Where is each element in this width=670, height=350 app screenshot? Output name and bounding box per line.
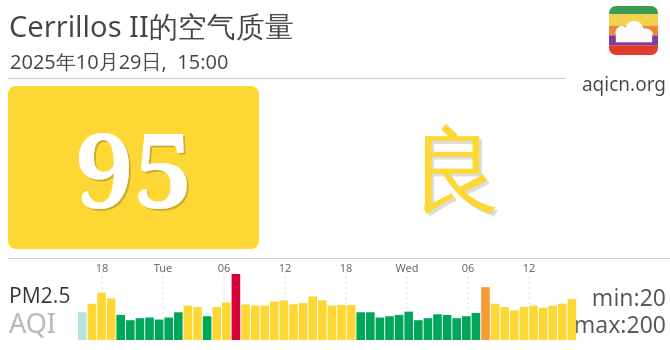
staticText: 06: [204, 260, 244, 275]
button[interactable]: aqicn.org logo: [609, 6, 658, 55]
staticText: AQI: [9, 304, 56, 341]
staticText: 18: [326, 260, 366, 275]
button[interactable]: 95: [8, 86, 259, 249]
staticText: 12: [509, 260, 549, 275]
staticText: PM2.5: [9, 281, 71, 310]
staticText: aqicn.org: [571, 71, 666, 97]
staticText: Wed: [387, 260, 427, 275]
staticText: min:20: [556, 281, 666, 312]
staticText: 95: [75, 97, 193, 239]
staticText: 良: [413, 116, 505, 226]
staticText: 2025年10月29日, 15:00: [10, 48, 229, 75]
staticText: 良: [410, 113, 502, 223]
staticText: Tue: [143, 260, 183, 275]
staticText: max:200: [556, 308, 666, 339]
staticText: 12: [265, 260, 305, 275]
staticText: 18: [82, 260, 122, 275]
staticText: 95: [77, 99, 195, 241]
staticText: 06: [448, 260, 488, 275]
button[interactable]: AQI history chart: [0, 272, 670, 342]
staticText: Cerrillos II的空气质量: [9, 6, 294, 46]
